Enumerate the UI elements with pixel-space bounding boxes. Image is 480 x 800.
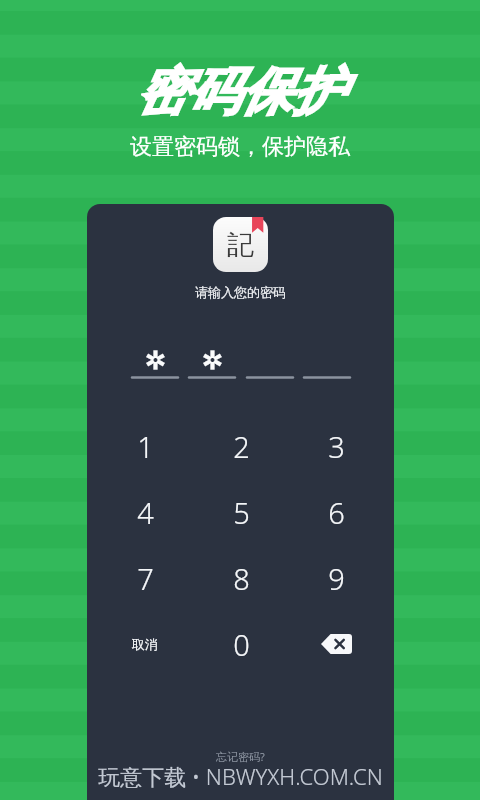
staticText: 玩意下载 • NBWYXH.COM.CN [98,761,383,791]
staticText: 記 [227,228,254,262]
staticText: 1 [137,427,154,466]
staticText: 2 [233,427,250,466]
button[interactable]: 取消 [108,611,182,677]
staticText: ✲ [202,346,223,372]
staticText: 3 [328,427,345,466]
staticText: 0 [233,625,250,664]
button[interactable]: 0 [204,611,278,677]
staticText: ✲ [145,346,166,372]
staticText: 设置密码锁，保护隐私 [130,133,350,161]
button[interactable]: 5 [204,479,278,545]
staticText: 4 [137,493,154,532]
staticText: 6 [328,493,345,532]
button[interactable]: 2 [204,413,278,479]
staticText: 密码保护 [136,60,344,124]
button[interactable]: 7 [108,545,182,611]
staticText: 5 [233,493,250,532]
button[interactable]: 4 [108,479,182,545]
button[interactable]: 忘记密码? [204,746,277,767]
button[interactable]: 1 [108,413,182,479]
staticText: 忘记密码? [216,749,265,764]
staticText: 请输入您的密码 [195,284,286,300]
button[interactable]: 3 [299,413,373,479]
button[interactable]: 9 [299,545,373,611]
button[interactable]: Delete [299,611,373,677]
staticText: 9 [328,559,345,598]
staticText: 8 [233,559,250,598]
button[interactable]: 8 [204,545,278,611]
staticText: 7 [137,559,154,598]
staticText: 取消 [132,636,158,652]
button[interactable]: 6 [299,479,373,545]
